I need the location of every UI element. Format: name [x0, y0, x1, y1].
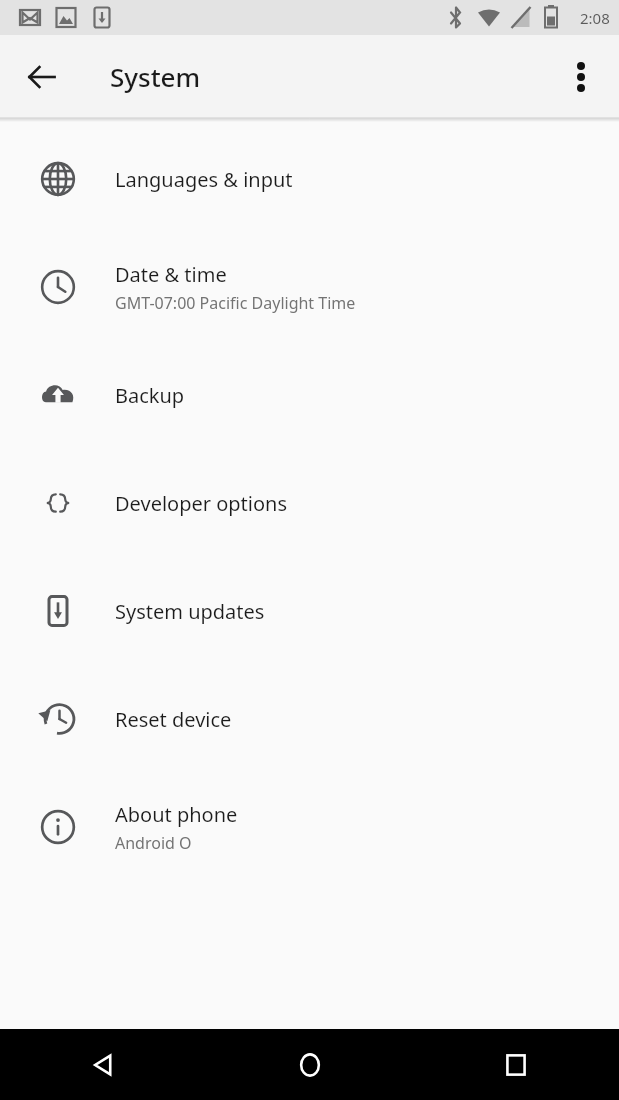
button[interactable]: About phone [0, 773, 619, 881]
button[interactable]: Developer options [0, 449, 619, 557]
button[interactable]: More options [553, 49, 609, 105]
staticText: Date & time [115, 261, 227, 288]
button[interactable]: Home [207, 1029, 413, 1100]
staticText: Languages & input [115, 166, 293, 193]
button[interactable]: Date & time [0, 233, 619, 341]
staticText: Reset device [115, 706, 232, 733]
staticText: 2:08 [580, 8, 610, 28]
staticText: System updates [115, 598, 265, 625]
staticText: GMT-07:00 Pacific Daylight Time [115, 292, 356, 314]
button[interactable]: Reset device [0, 665, 619, 773]
staticText: Developer options [115, 490, 288, 517]
staticText: System [110, 59, 201, 94]
staticText: About phone [115, 801, 238, 828]
button[interactable]: Backup [0, 341, 619, 449]
staticText: Android O [115, 832, 192, 854]
button[interactable]: Back [0, 1029, 207, 1100]
button[interactable]: Recent apps [413, 1029, 619, 1100]
button[interactable]: System updates [0, 557, 619, 665]
button[interactable]: Languages & input [0, 125, 619, 233]
staticText: Backup [115, 382, 185, 409]
button[interactable]: Back [14, 49, 70, 105]
